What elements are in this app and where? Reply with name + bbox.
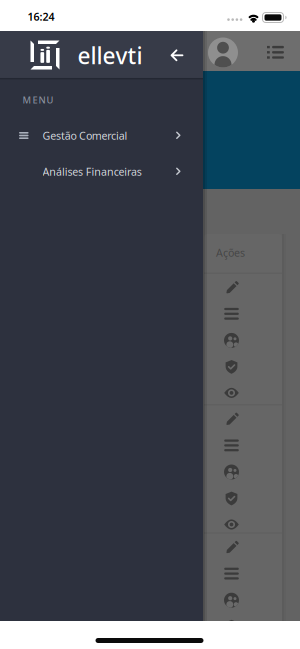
button[interactable]: Usuários: [224, 333, 239, 348]
button[interactable]: Análises Financeiras: [0, 153, 203, 189]
staticText: Análises Financeiras: [42, 164, 142, 179]
button[interactable]: Permissões: [224, 359, 239, 374]
button[interactable]: Visualizar: [224, 517, 239, 532]
button[interactable]: Permissões: [224, 491, 239, 506]
button[interactable]: Gestão Comercial: [0, 117, 203, 153]
staticText: Ações: [216, 245, 245, 260]
button[interactable]: Perfil: [208, 37, 238, 67]
button[interactable]: Voltar: [170, 49, 183, 61]
button[interactable]: Editar: [224, 540, 239, 555]
staticText: Gestão Comercial: [42, 128, 127, 143]
button[interactable]: Editar: [224, 280, 239, 295]
button[interactable]: Editar: [224, 412, 239, 427]
button[interactable]: Usuários: [224, 464, 239, 479]
button[interactable]: Detalhes: [224, 566, 239, 581]
staticText: MENU: [22, 94, 53, 106]
button[interactable]: Visualizar: [224, 385, 239, 400]
staticText: 16:24: [27, 9, 54, 24]
staticText: ellevti: [77, 40, 142, 70]
button[interactable]: Detalhes: [224, 306, 239, 321]
button[interactable]: Usuários: [224, 593, 239, 608]
button[interactable]: Lista: [266, 44, 284, 60]
button[interactable]: Permissões: [224, 619, 239, 634]
button[interactable]: Detalhes: [224, 438, 239, 453]
